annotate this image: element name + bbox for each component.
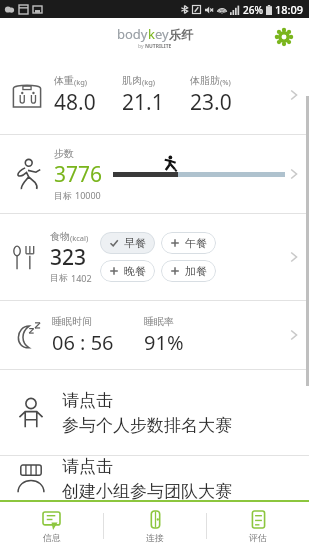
staticText: body (117, 25, 148, 43)
staticText: k (148, 25, 155, 43)
staticText: 3776 (54, 160, 103, 189)
button[interactable]: Settings (271, 24, 297, 50)
staticText: 睡眠率 (144, 315, 174, 328)
staticText: 48.0 (54, 88, 96, 117)
staticText: by (138, 43, 145, 50)
staticText: 06 : 56 (52, 329, 114, 356)
staticText: 10000 (75, 189, 101, 201)
button[interactable]: 信息 (0, 502, 103, 550)
staticText: 创建小组参与团队大赛 (62, 481, 232, 500)
staticText: 睡眠时间 (52, 315, 92, 328)
staticText: 323 (50, 243, 87, 272)
staticText: 26% (243, 3, 263, 17)
button[interactable]: 体重 (0, 56, 309, 134)
button[interactable]: 早餐 (100, 232, 155, 254)
staticText: 加餐 (185, 264, 207, 278)
staticText: 请点击 (62, 390, 113, 411)
staticText: (kcal) (70, 233, 89, 243)
staticText: 23.0 (190, 88, 232, 117)
staticText: 午餐 (185, 236, 207, 250)
staticText: 体脂肪 (190, 74, 220, 87)
staticText: 晚餐 (124, 264, 146, 278)
staticText: 21.1 (122, 88, 164, 117)
button[interactable]: 请点击 (0, 456, 309, 500)
staticText: 请点击 (62, 456, 113, 477)
button[interactable]: 步数 (0, 135, 309, 213)
staticText: NUTRILITE (145, 43, 172, 50)
button[interactable]: 睡眠时间 (0, 301, 309, 369)
button[interactable]: 评估 (207, 502, 309, 550)
button[interactable]: 加餐 (161, 260, 216, 282)
staticText: 步数 (54, 147, 74, 160)
staticText: (%) (220, 77, 231, 87)
button[interactable]: 晚餐 (100, 260, 155, 282)
button[interactable]: 连接 (104, 502, 206, 550)
staticText: 肌肉 (122, 74, 142, 87)
staticText: 91% (144, 329, 184, 356)
staticText: 体重 (54, 74, 74, 87)
button[interactable]: 请点击 (0, 370, 309, 455)
staticText: 目标 (54, 190, 72, 201)
staticText: 连接 (146, 532, 164, 543)
staticText: (kg) (74, 77, 88, 87)
staticText: 信息 (43, 532, 61, 543)
staticText: 目标 (50, 272, 68, 283)
button[interactable]: 午餐 (161, 232, 216, 254)
staticText: 18:09 (275, 2, 304, 17)
staticText: 评估 (249, 532, 267, 543)
staticText: ey (155, 25, 169, 43)
staticText: 乐纤 (169, 27, 193, 42)
staticText: 1402 (71, 272, 92, 284)
staticText: (kg) (142, 77, 156, 87)
staticText: 食物 (50, 230, 70, 243)
button[interactable]: 食物 (0, 214, 309, 300)
staticText: 早餐 (124, 236, 146, 250)
staticText: 参与个人步数排名大赛 (62, 415, 232, 436)
